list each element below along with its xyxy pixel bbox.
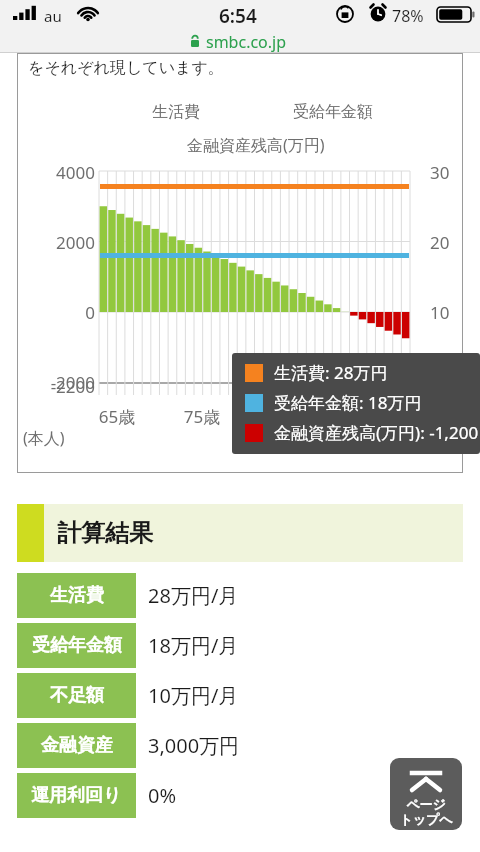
staticText: 30 <box>430 161 470 184</box>
staticText: 65歳 <box>87 405 147 428</box>
staticText: 受給年金額 <box>293 102 373 122</box>
staticText: 28万円/月 <box>148 582 239 609</box>
staticText: 100歳 <box>362 405 426 428</box>
staticText: 6:54 <box>219 3 257 29</box>
staticText: 78% <box>392 5 424 27</box>
staticText: 受給年金額: 18万円 <box>274 391 422 414</box>
staticText: トップへ <box>390 811 462 827</box>
staticText: 95歳 <box>322 405 382 428</box>
staticText: 計算結果 <box>57 518 153 548</box>
button[interactable]: 運用利回り <box>17 773 463 818</box>
staticText: 3,000万円 <box>148 732 240 759</box>
button[interactable]: 金融資産 <box>17 723 463 768</box>
staticText: 2000 <box>35 231 95 254</box>
staticText: -2000 <box>27 371 95 394</box>
staticText: 金融資産残高(万円) <box>187 134 325 156</box>
staticText: 4000 <box>35 161 95 184</box>
staticText: 生活費 <box>152 102 200 122</box>
button[interactable]: 不足額 <box>17 673 463 718</box>
staticText: 10万円/月 <box>148 682 239 709</box>
staticText: 生活費: 28万円 <box>274 361 388 384</box>
staticText: 金融資産残高(万円): -1,200 <box>274 421 479 444</box>
button[interactable]: Address bar smbc.co.jp <box>0 30 480 53</box>
staticText: smbc.co.jp <box>206 31 287 53</box>
staticText: をそれぞれ現しています。 <box>28 58 224 78</box>
button[interactable]: 生活費 <box>17 573 463 618</box>
staticText: 85歳 <box>257 405 317 428</box>
staticText: 受給年金額 <box>32 634 122 657</box>
staticText: au <box>44 6 62 26</box>
staticText: ページ <box>390 796 462 812</box>
staticText: 10 <box>430 301 470 324</box>
staticText: 18万円/月 <box>148 632 239 659</box>
staticText: 20 <box>430 231 470 254</box>
staticText: 0 <box>35 301 95 324</box>
staticText: (本人) <box>23 427 65 449</box>
staticText: 金融資産 <box>41 734 113 757</box>
staticText: 生活費 <box>50 584 104 607</box>
button[interactable]: ページトップへ <box>390 758 462 830</box>
staticText: 75歳 <box>172 405 232 428</box>
staticText: 運用利回り <box>31 784 122 807</box>
staticText: 0% <box>148 782 177 809</box>
button[interactable]: 受給年金額 <box>17 623 463 668</box>
staticText: -2200 <box>27 375 95 398</box>
staticText: 不足額 <box>50 684 104 707</box>
